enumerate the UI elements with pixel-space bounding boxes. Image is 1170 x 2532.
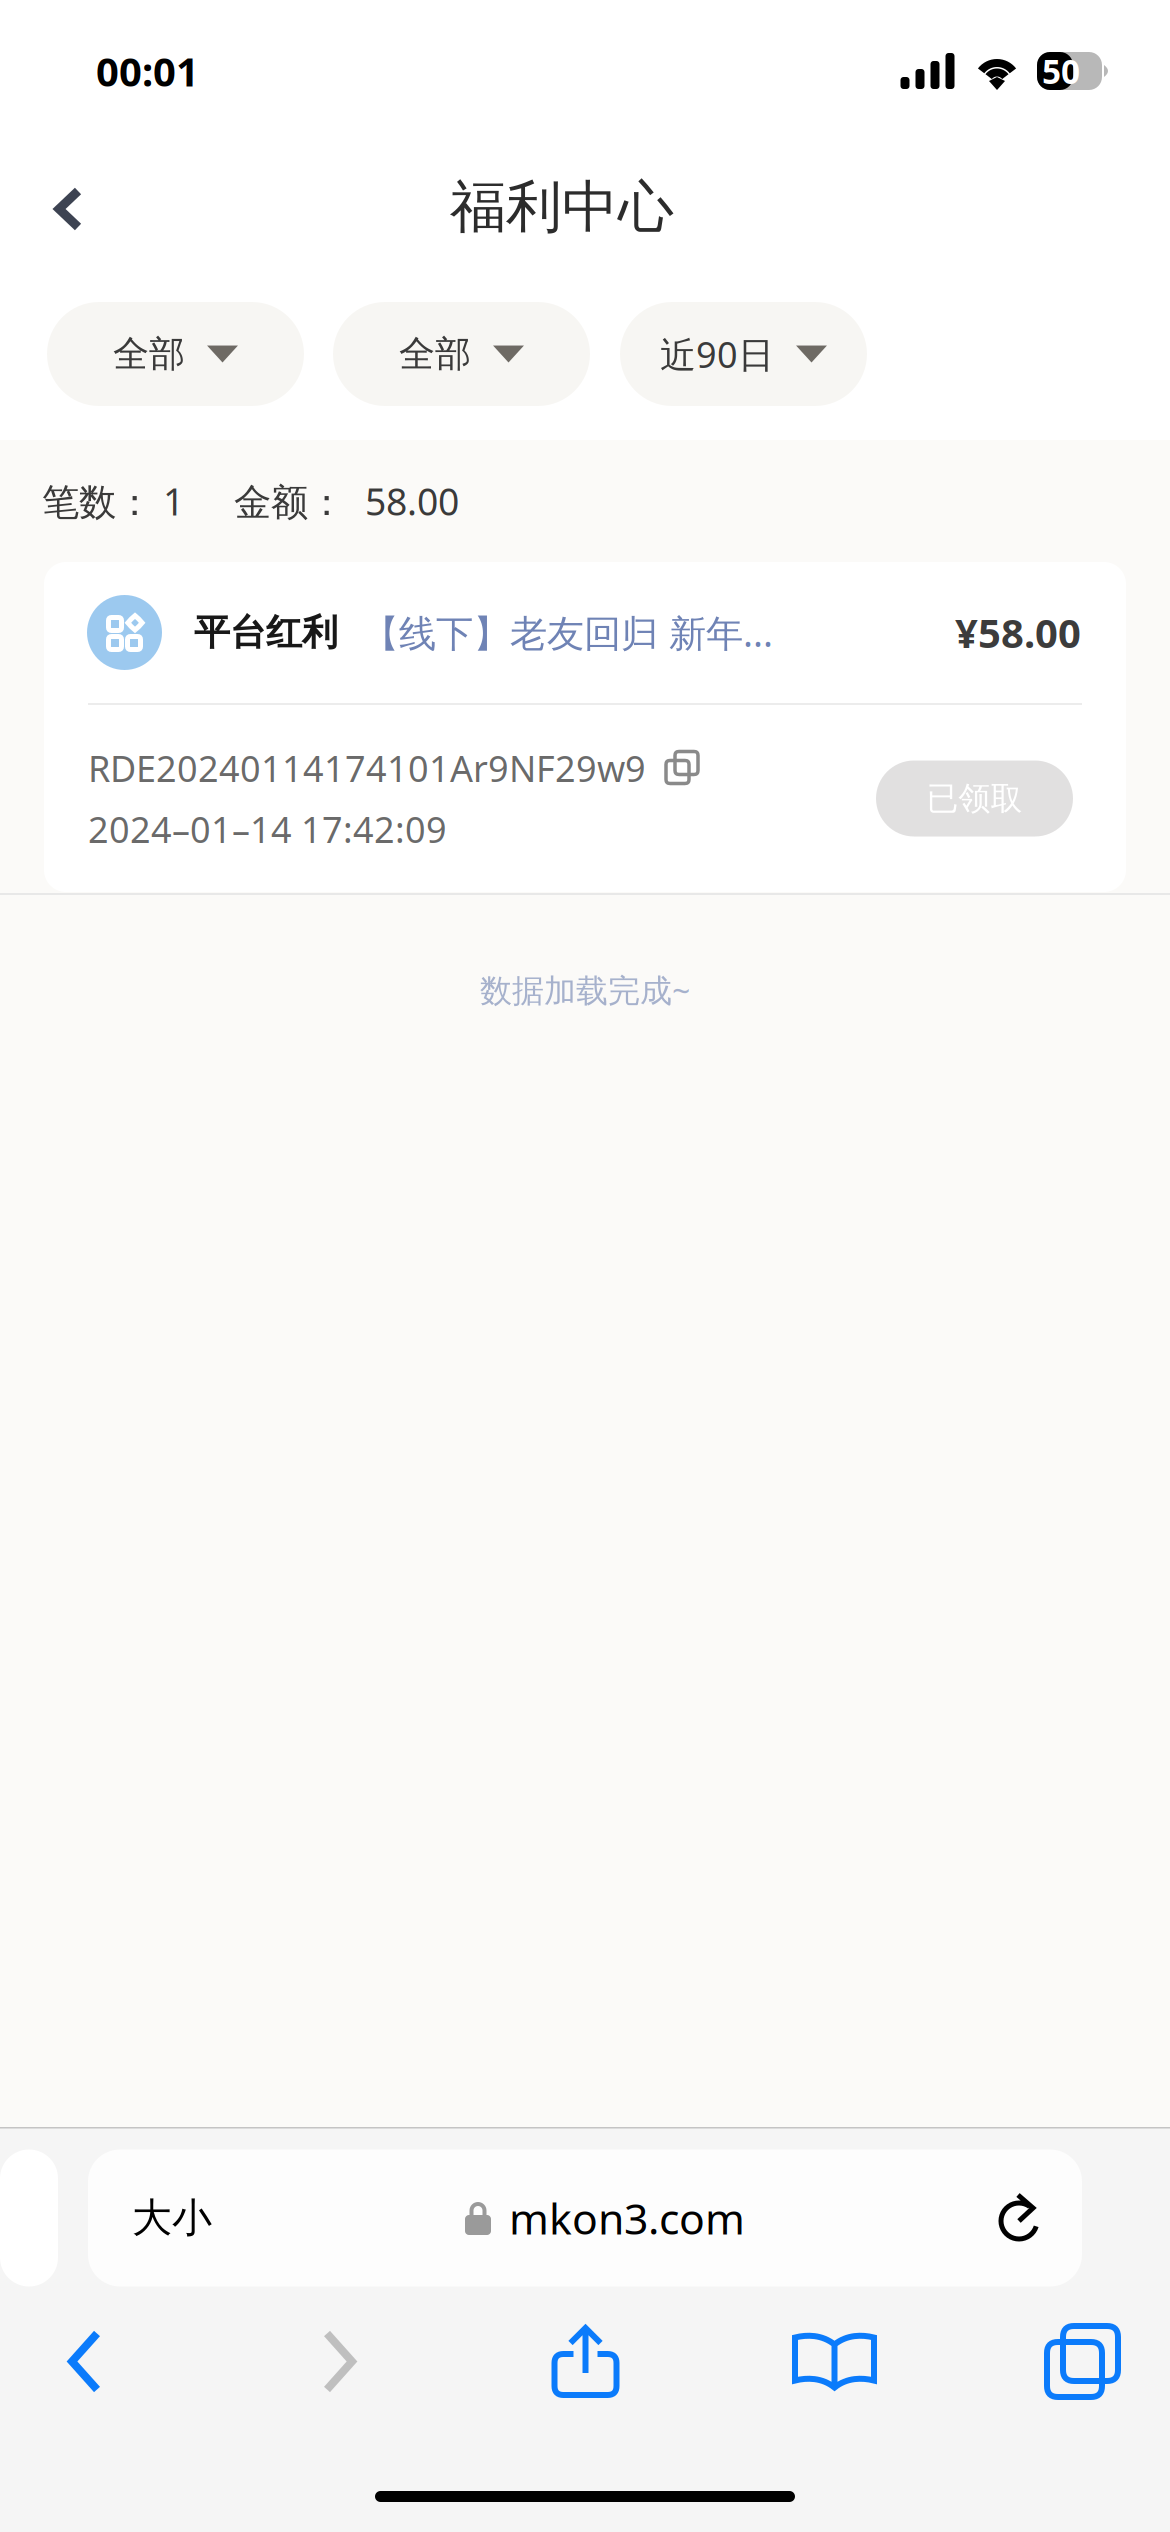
staticText: ¥58.00 (955, 605, 1081, 660)
staticText: 大小 (132, 2193, 212, 2243)
staticText: 全部 (399, 331, 471, 377)
button[interactable]: Back (0, 185, 117, 255)
button[interactable]: Share (500, 2306, 670, 2416)
staticText: 已领取 (926, 778, 1022, 819)
button[interactable]: 全部 (47, 302, 304, 406)
staticText: 数据加载完成~ (480, 968, 690, 1012)
button[interactable]: 全部 (333, 302, 590, 406)
button[interactable]: Tabs (997, 2306, 1167, 2416)
staticText: 福利中心 (450, 172, 674, 242)
button[interactable]: 已领取 (876, 760, 1073, 836)
staticText: 笔数： 1 金额： 58.00 (42, 476, 459, 526)
staticText: 00:01 (96, 44, 199, 98)
button[interactable]: Forward (254, 2306, 424, 2416)
staticText: 全部 (113, 331, 185, 377)
staticText: 50 (1042, 48, 1080, 94)
staticText: 平台红利 (194, 610, 338, 655)
staticText: 近90日 (660, 329, 774, 378)
staticText: RDE20240114174101Ar9NF29w9 (88, 743, 646, 792)
button[interactable]: Back (0, 2306, 169, 2416)
staticText: 【线下】老友回归 新年... (362, 607, 773, 658)
button[interactable]: 大小 (88, 2149, 1082, 2286)
button[interactable]: 近90日 (620, 302, 867, 406)
staticText: mkon3.com (509, 2189, 745, 2247)
button[interactable]: Bookmarks (749, 2306, 919, 2416)
staticText: 2024–01–14 17:42:09 (88, 804, 447, 853)
